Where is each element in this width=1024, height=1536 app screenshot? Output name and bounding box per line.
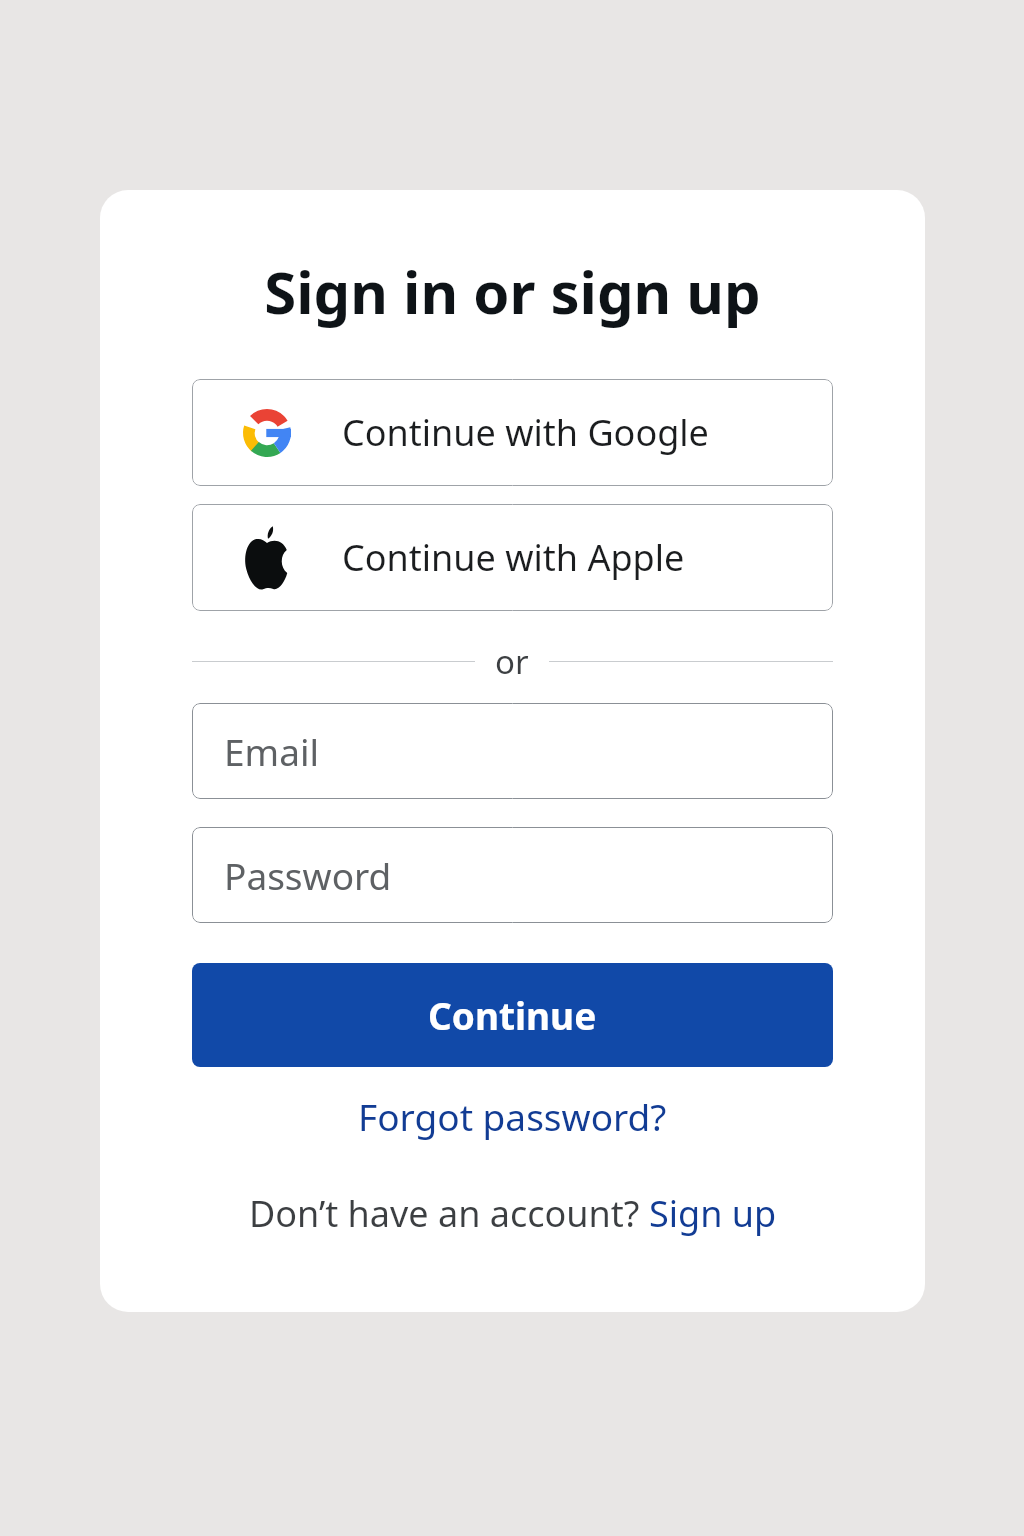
staticText: Continue xyxy=(428,990,597,1040)
button[interactable]: Email xyxy=(192,703,833,799)
staticText: Sign in or sign up xyxy=(264,252,761,331)
staticText: or xyxy=(495,639,529,683)
button[interactable]: Continue xyxy=(192,963,833,1067)
staticText: Password xyxy=(224,850,392,900)
staticText: Sign up xyxy=(649,1189,777,1238)
button[interactable]: Forgot password? xyxy=(344,1081,681,1151)
button[interactable]: Google logo xyxy=(192,379,833,486)
staticText: Don’t have an account? xyxy=(249,1189,649,1238)
staticText: Continue with Apple xyxy=(342,533,685,582)
other: Apple logo xyxy=(242,526,292,590)
staticText: Email xyxy=(224,726,320,776)
button[interactable]: Apple logo xyxy=(192,504,833,611)
other: Google logo xyxy=(243,409,291,457)
staticText: Forgot password? xyxy=(358,1091,667,1141)
button[interactable]: Sign up xyxy=(649,1189,777,1238)
button[interactable]: Password xyxy=(192,827,833,923)
staticText: Continue with Google xyxy=(342,408,709,457)
